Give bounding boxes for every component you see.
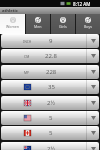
button[interactable]: 2½ (1, 96, 99, 110)
staticText: CM (24, 54, 30, 59)
staticText: Girls (59, 24, 67, 29)
staticText: 8:12 AM (73, 1, 91, 7)
button[interactable]: Boys (76, 14, 100, 34)
button[interactable]: 2½ (1, 142, 99, 150)
staticText: Women (6, 24, 20, 29)
staticText: INCH (23, 39, 32, 44)
staticText: 22.8 (45, 52, 57, 60)
staticText: 9 (49, 37, 53, 45)
button[interactable]: 5 (1, 126, 99, 140)
button[interactable]: Girls (51, 14, 75, 34)
staticText: Boys (84, 24, 92, 29)
button[interactable]: Men (26, 14, 50, 34)
button[interactable]: MP (1, 65, 99, 79)
button[interactable]: 35 (1, 80, 99, 94)
button[interactable]: CM (1, 49, 99, 63)
button[interactable]: Women (0, 14, 25, 34)
staticText: Men (34, 24, 42, 29)
button[interactable]: 5 (1, 111, 99, 125)
staticText: 35 (48, 83, 55, 91)
staticText: 2½ (47, 99, 56, 107)
staticText: MP (24, 70, 30, 75)
staticText: 228 (46, 68, 57, 76)
staticText: 2½ (47, 145, 56, 150)
staticText: 5 (49, 114, 53, 122)
button[interactable]: INCH (1, 34, 99, 48)
staticText: 5 (49, 129, 53, 137)
staticText: athletic (2, 8, 19, 14)
